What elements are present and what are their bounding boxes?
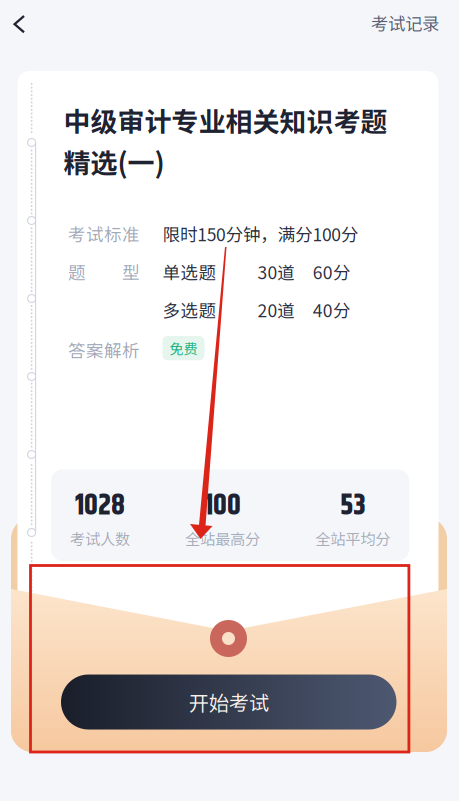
staticText: 免费 xyxy=(169,338,197,358)
staticText: 1028 xyxy=(75,484,125,529)
staticText: 多选题 xyxy=(162,297,216,322)
button[interactable]: 开始考试 xyxy=(61,674,396,729)
staticText: 40分 xyxy=(313,297,351,322)
staticText: 答案解析 xyxy=(68,337,140,362)
staticText: 30道 xyxy=(257,259,295,284)
staticText: 60分 xyxy=(313,259,351,284)
button[interactable]: 考试记录 xyxy=(339,0,439,47)
staticText: 题 xyxy=(68,259,86,284)
staticText: 精选(一) xyxy=(63,142,164,181)
staticText: 型 xyxy=(122,259,140,284)
staticText: 100 xyxy=(204,484,241,529)
staticText: 中级审计专业相关知识考题 xyxy=(63,100,387,140)
staticText: 53 xyxy=(340,484,365,529)
button[interactable]: Back xyxy=(0,0,46,48)
staticText: 考试记录 xyxy=(371,10,439,36)
staticText: 全站平均分 xyxy=(315,527,390,549)
staticText: 考试标准 xyxy=(68,221,140,246)
staticText: 20道 xyxy=(257,297,295,322)
staticText: 限时150分钟，满分100分 xyxy=(162,221,359,246)
staticText: 开始考试 xyxy=(189,687,269,717)
staticText: 全站最高分 xyxy=(185,527,260,549)
staticText: 考试人数 xyxy=(70,527,130,549)
staticText: 单选题 xyxy=(162,259,216,284)
